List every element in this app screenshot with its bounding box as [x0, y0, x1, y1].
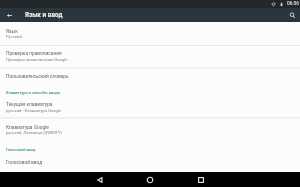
button[interactable]: Back	[92, 172, 107, 187]
staticText: 06:56	[287, 1, 299, 7]
staticText: Язык	[6, 28, 18, 34]
staticText: русский, Латиница (QWERTY)	[6, 130, 62, 135]
button[interactable]: Back	[2, 8, 16, 22]
staticText: Проверка правописания Google	[6, 57, 68, 62]
button[interactable]: Клавиатура Google	[0, 118, 300, 140]
button[interactable]: Голосовой ввод	[0, 155, 300, 172]
staticText: Голосовой ввод	[6, 147, 36, 152]
staticText: Язык и ввод	[25, 11, 63, 19]
button[interactable]: Recent apps	[193, 172, 208, 187]
staticText: Голосовой ввод	[6, 160, 43, 166]
staticText: русский - Клавиатура Google	[6, 108, 62, 113]
staticText: Клавиатура Google	[6, 125, 49, 131]
staticText: Русский	[6, 34, 22, 39]
staticText: Текущая клавиатура	[6, 102, 53, 108]
button[interactable]: Язык	[0, 22, 300, 45]
button[interactable]: Search	[285, 8, 299, 22]
staticText: Пользовательский словарь	[6, 74, 69, 80]
button[interactable]: Home	[142, 172, 157, 187]
staticText: Клавиатура и способы ввода	[6, 90, 60, 95]
button[interactable]: Проверка правописания	[0, 46, 300, 67]
button[interactable]: Текущая клавиатура	[0, 97, 300, 117]
staticText: Проверка правописания	[6, 51, 62, 57]
button[interactable]: Пользовательский словарь	[0, 68, 300, 84]
